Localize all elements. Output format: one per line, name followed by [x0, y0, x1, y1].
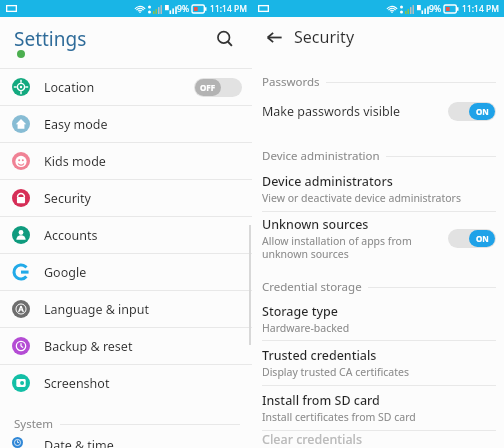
staticText: Date & time: [44, 437, 242, 448]
staticText: Passwords: [262, 74, 320, 90]
staticText: Display trusted CA certificates: [262, 365, 409, 379]
staticText: Clear credentials: [262, 431, 363, 448]
staticText: Language & input: [44, 301, 242, 318]
staticText: Accounts: [44, 227, 242, 244]
staticText: ON: [476, 233, 489, 244]
button[interactable]: ON: [448, 102, 496, 121]
button[interactable]: Backup & reset: [0, 328, 252, 364]
staticText: Trusted credentials: [262, 347, 377, 364]
staticText: ON: [476, 106, 489, 117]
staticText: Credential storage: [262, 279, 362, 295]
button[interactable]: ON: [448, 229, 496, 248]
staticText: Install certificates from SD card: [262, 410, 416, 424]
button[interactable]: OFF: [194, 78, 242, 97]
staticText: Unknown sources: [262, 216, 369, 233]
button[interactable]: Location: [0, 69, 252, 105]
staticText: OFF: [200, 82, 216, 93]
staticText: Easy mode: [44, 116, 242, 133]
staticText: Google: [44, 264, 242, 281]
button[interactable]: Screenshot: [0, 365, 252, 401]
button[interactable]: Kids mode: [0, 143, 252, 179]
button[interactable]: Storage type: [252, 298, 504, 340]
staticText: 11:14 PM: [210, 3, 247, 15]
button[interactable]: Easy mode: [0, 106, 252, 142]
button[interactable]: Make passwords visible: [252, 93, 504, 129]
staticText: Device administration: [262, 148, 380, 164]
staticText: Screenshot: [44, 375, 242, 392]
staticText: Hardware-backed: [262, 321, 350, 335]
button[interactable]: Unknown sources: [252, 212, 504, 264]
button[interactable]: Search: [208, 22, 242, 56]
staticText: Location: [44, 79, 194, 96]
button[interactable]: Back: [258, 21, 290, 53]
staticText: Storage type: [262, 303, 338, 320]
button[interactable]: Language & input: [0, 291, 252, 327]
staticText: Kids mode: [44, 153, 242, 170]
staticText: Make passwords visible: [262, 103, 400, 120]
staticText: Install from SD card: [262, 392, 380, 409]
staticText: Security: [294, 26, 355, 48]
button[interactable]: Security: [0, 180, 252, 216]
staticText: Device administrators: [262, 173, 393, 190]
button[interactable]: Device administrators: [252, 167, 504, 211]
staticText: 11:14 PM: [462, 3, 499, 15]
staticText: System: [14, 416, 54, 432]
button[interactable]: Clear credentials: [252, 431, 504, 448]
staticText: 9%: [429, 3, 441, 15]
button[interactable]: Accounts: [0, 217, 252, 253]
staticText: Settings: [14, 26, 87, 52]
staticText: Backup & reset: [44, 338, 242, 355]
button[interactable]: Trusted credentials: [252, 341, 504, 385]
staticText: Security: [44, 190, 242, 207]
button[interactable]: Google: [0, 254, 252, 290]
staticText: Allow installation of apps from unknown …: [262, 234, 412, 261]
staticText: View or deactivate device administrators: [262, 191, 461, 205]
button[interactable]: Date & time: [0, 437, 252, 448]
staticText: 9%: [177, 3, 189, 15]
button[interactable]: Install from SD card: [252, 386, 504, 430]
